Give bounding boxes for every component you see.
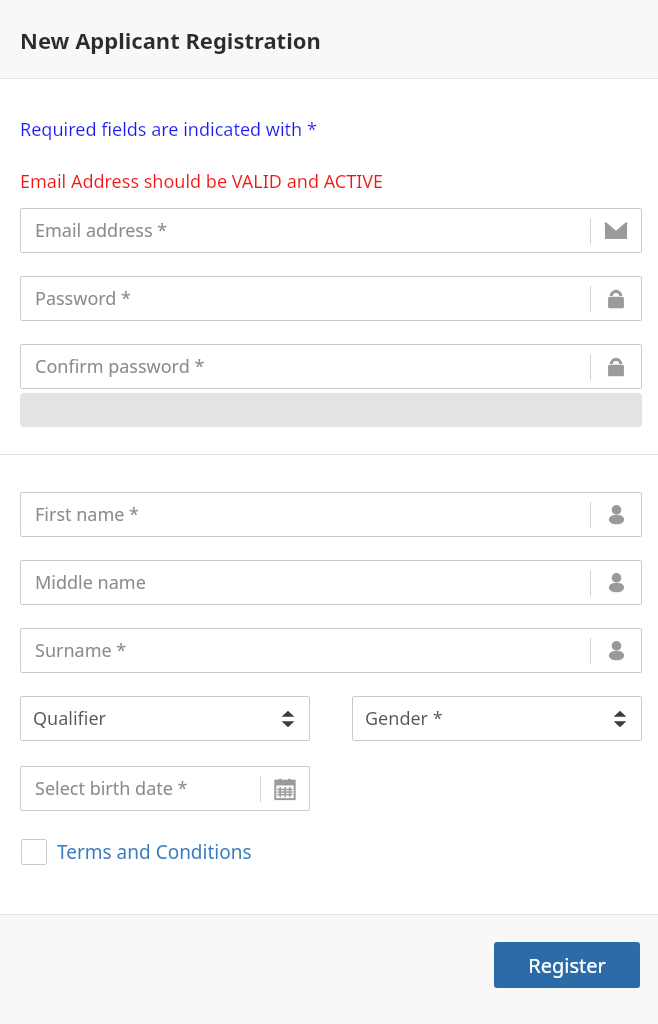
button[interactable]: Select birth date * bbox=[20, 766, 310, 811]
other: Email bbox=[590, 208, 642, 253]
button[interactable]: Terms and Conditions bbox=[21, 839, 252, 865]
button[interactable]: Surname * bbox=[20, 628, 642, 673]
staticText: Register bbox=[528, 952, 606, 979]
staticText: Select birth date * bbox=[35, 776, 188, 801]
other: Surname bbox=[590, 628, 642, 673]
button[interactable]: Register bbox=[494, 942, 640, 988]
other: First name bbox=[590, 492, 642, 537]
button[interactable]: Email address * bbox=[20, 208, 642, 253]
staticText: New Applicant Registration bbox=[20, 25, 321, 55]
staticText: Confirm password * bbox=[35, 354, 205, 379]
staticText: First name * bbox=[35, 502, 140, 527]
button[interactable]: Gender * bbox=[352, 696, 642, 741]
staticText: Gender * bbox=[365, 706, 443, 731]
staticText: Required fields are indicated with * bbox=[20, 117, 317, 142]
other: Middle name bbox=[590, 560, 642, 605]
staticText: Password * bbox=[35, 286, 132, 311]
button[interactable]: Password * bbox=[20, 276, 642, 321]
button[interactable]: Middle name bbox=[20, 560, 642, 605]
button[interactable]: First name * bbox=[20, 492, 642, 537]
button[interactable]: Qualifier bbox=[20, 696, 310, 741]
staticText: Surname * bbox=[35, 638, 127, 663]
staticText: Qualifier bbox=[33, 706, 106, 731]
button[interactable]: Confirm password * bbox=[20, 344, 642, 389]
staticText: Email address * bbox=[35, 218, 168, 243]
other: Confirm password bbox=[590, 344, 642, 389]
other: Select birth date bbox=[260, 766, 310, 811]
staticText: Middle name bbox=[35, 570, 146, 595]
staticText: Email Address should be VALID and ACTIVE bbox=[20, 169, 384, 194]
other: Password bbox=[590, 276, 642, 321]
staticText: Terms and Conditions bbox=[57, 839, 252, 865]
